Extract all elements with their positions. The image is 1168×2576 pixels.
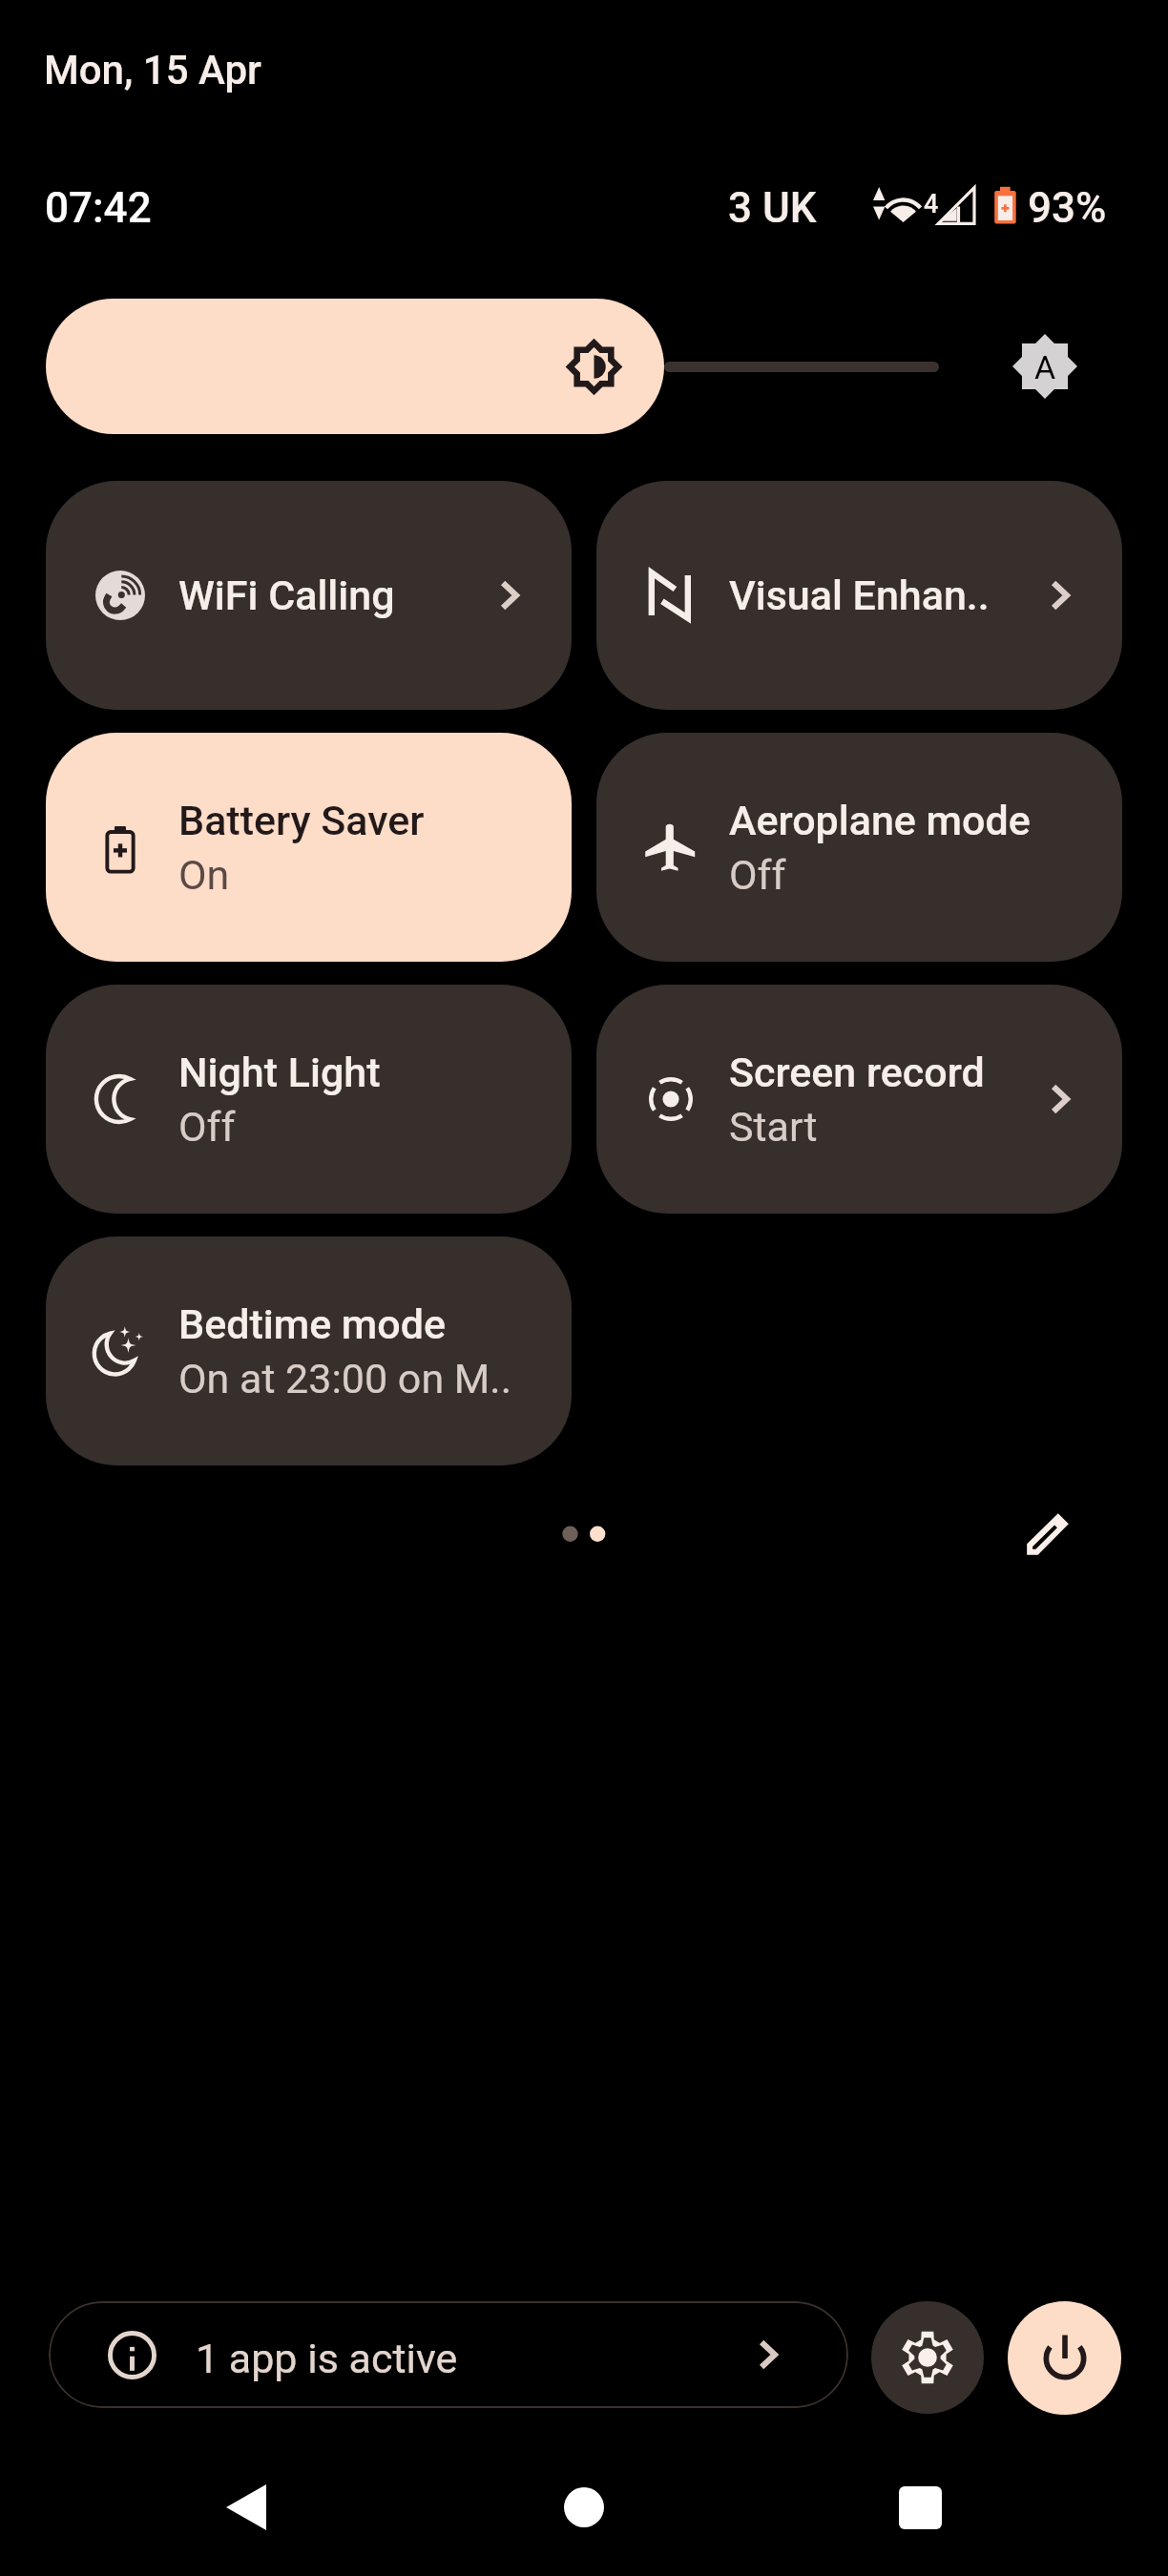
button[interactable]: WiFi Calling: [46, 481, 572, 710]
button[interactable]: Power: [1008, 2301, 1121, 2415]
staticText: Night Light: [178, 1049, 381, 1096]
button[interactable]: 1 app is active: [49, 2301, 848, 2408]
button[interactable]: Settings: [871, 2301, 984, 2414]
staticText: Off: [178, 1103, 236, 1151]
button[interactable]: Battery Saver: [46, 733, 572, 962]
staticText: 1 app is active: [196, 2335, 458, 2382]
staticText: 07:42: [45, 183, 152, 233]
staticText: On: [178, 851, 230, 899]
staticText: 3 UK: [728, 183, 817, 233]
button[interactable]: Aeroplane mode: [596, 733, 1122, 962]
staticText: Mon, 15 Apr: [44, 47, 261, 93]
staticText: 4: [924, 189, 939, 219]
button[interactable]: Home: [543, 2466, 625, 2548]
button[interactable]: Auto brightness: [1012, 334, 1077, 399]
staticText: On at 23:00 on M..: [178, 1355, 512, 1402]
button[interactable]: Edit: [1014, 1501, 1081, 1568]
staticText: WiFi Calling: [178, 571, 395, 619]
button[interactable]: Back: [205, 2466, 287, 2548]
staticText: Battery Saver: [178, 797, 425, 844]
button[interactable]: Bedtime mode: [46, 1236, 572, 1465]
button[interactable]: Night Light: [46, 985, 572, 1214]
staticText: Start: [729, 1103, 818, 1151]
staticText: Visual Enhan..: [729, 571, 990, 619]
staticText: A: [1034, 348, 1056, 386]
staticText: Aeroplane mode: [729, 797, 1031, 844]
button[interactable]: Screen record: [596, 985, 1122, 1214]
button[interactable]: Recents: [879, 2466, 961, 2548]
button[interactable]: Visual Enhan..: [596, 481, 1122, 710]
staticText: Screen record: [729, 1049, 985, 1096]
staticText: Off: [729, 851, 786, 899]
staticText: 93%: [1028, 183, 1107, 233]
staticText: Bedtime mode: [178, 1300, 446, 1348]
button[interactable]: Brightness: [46, 299, 664, 434]
